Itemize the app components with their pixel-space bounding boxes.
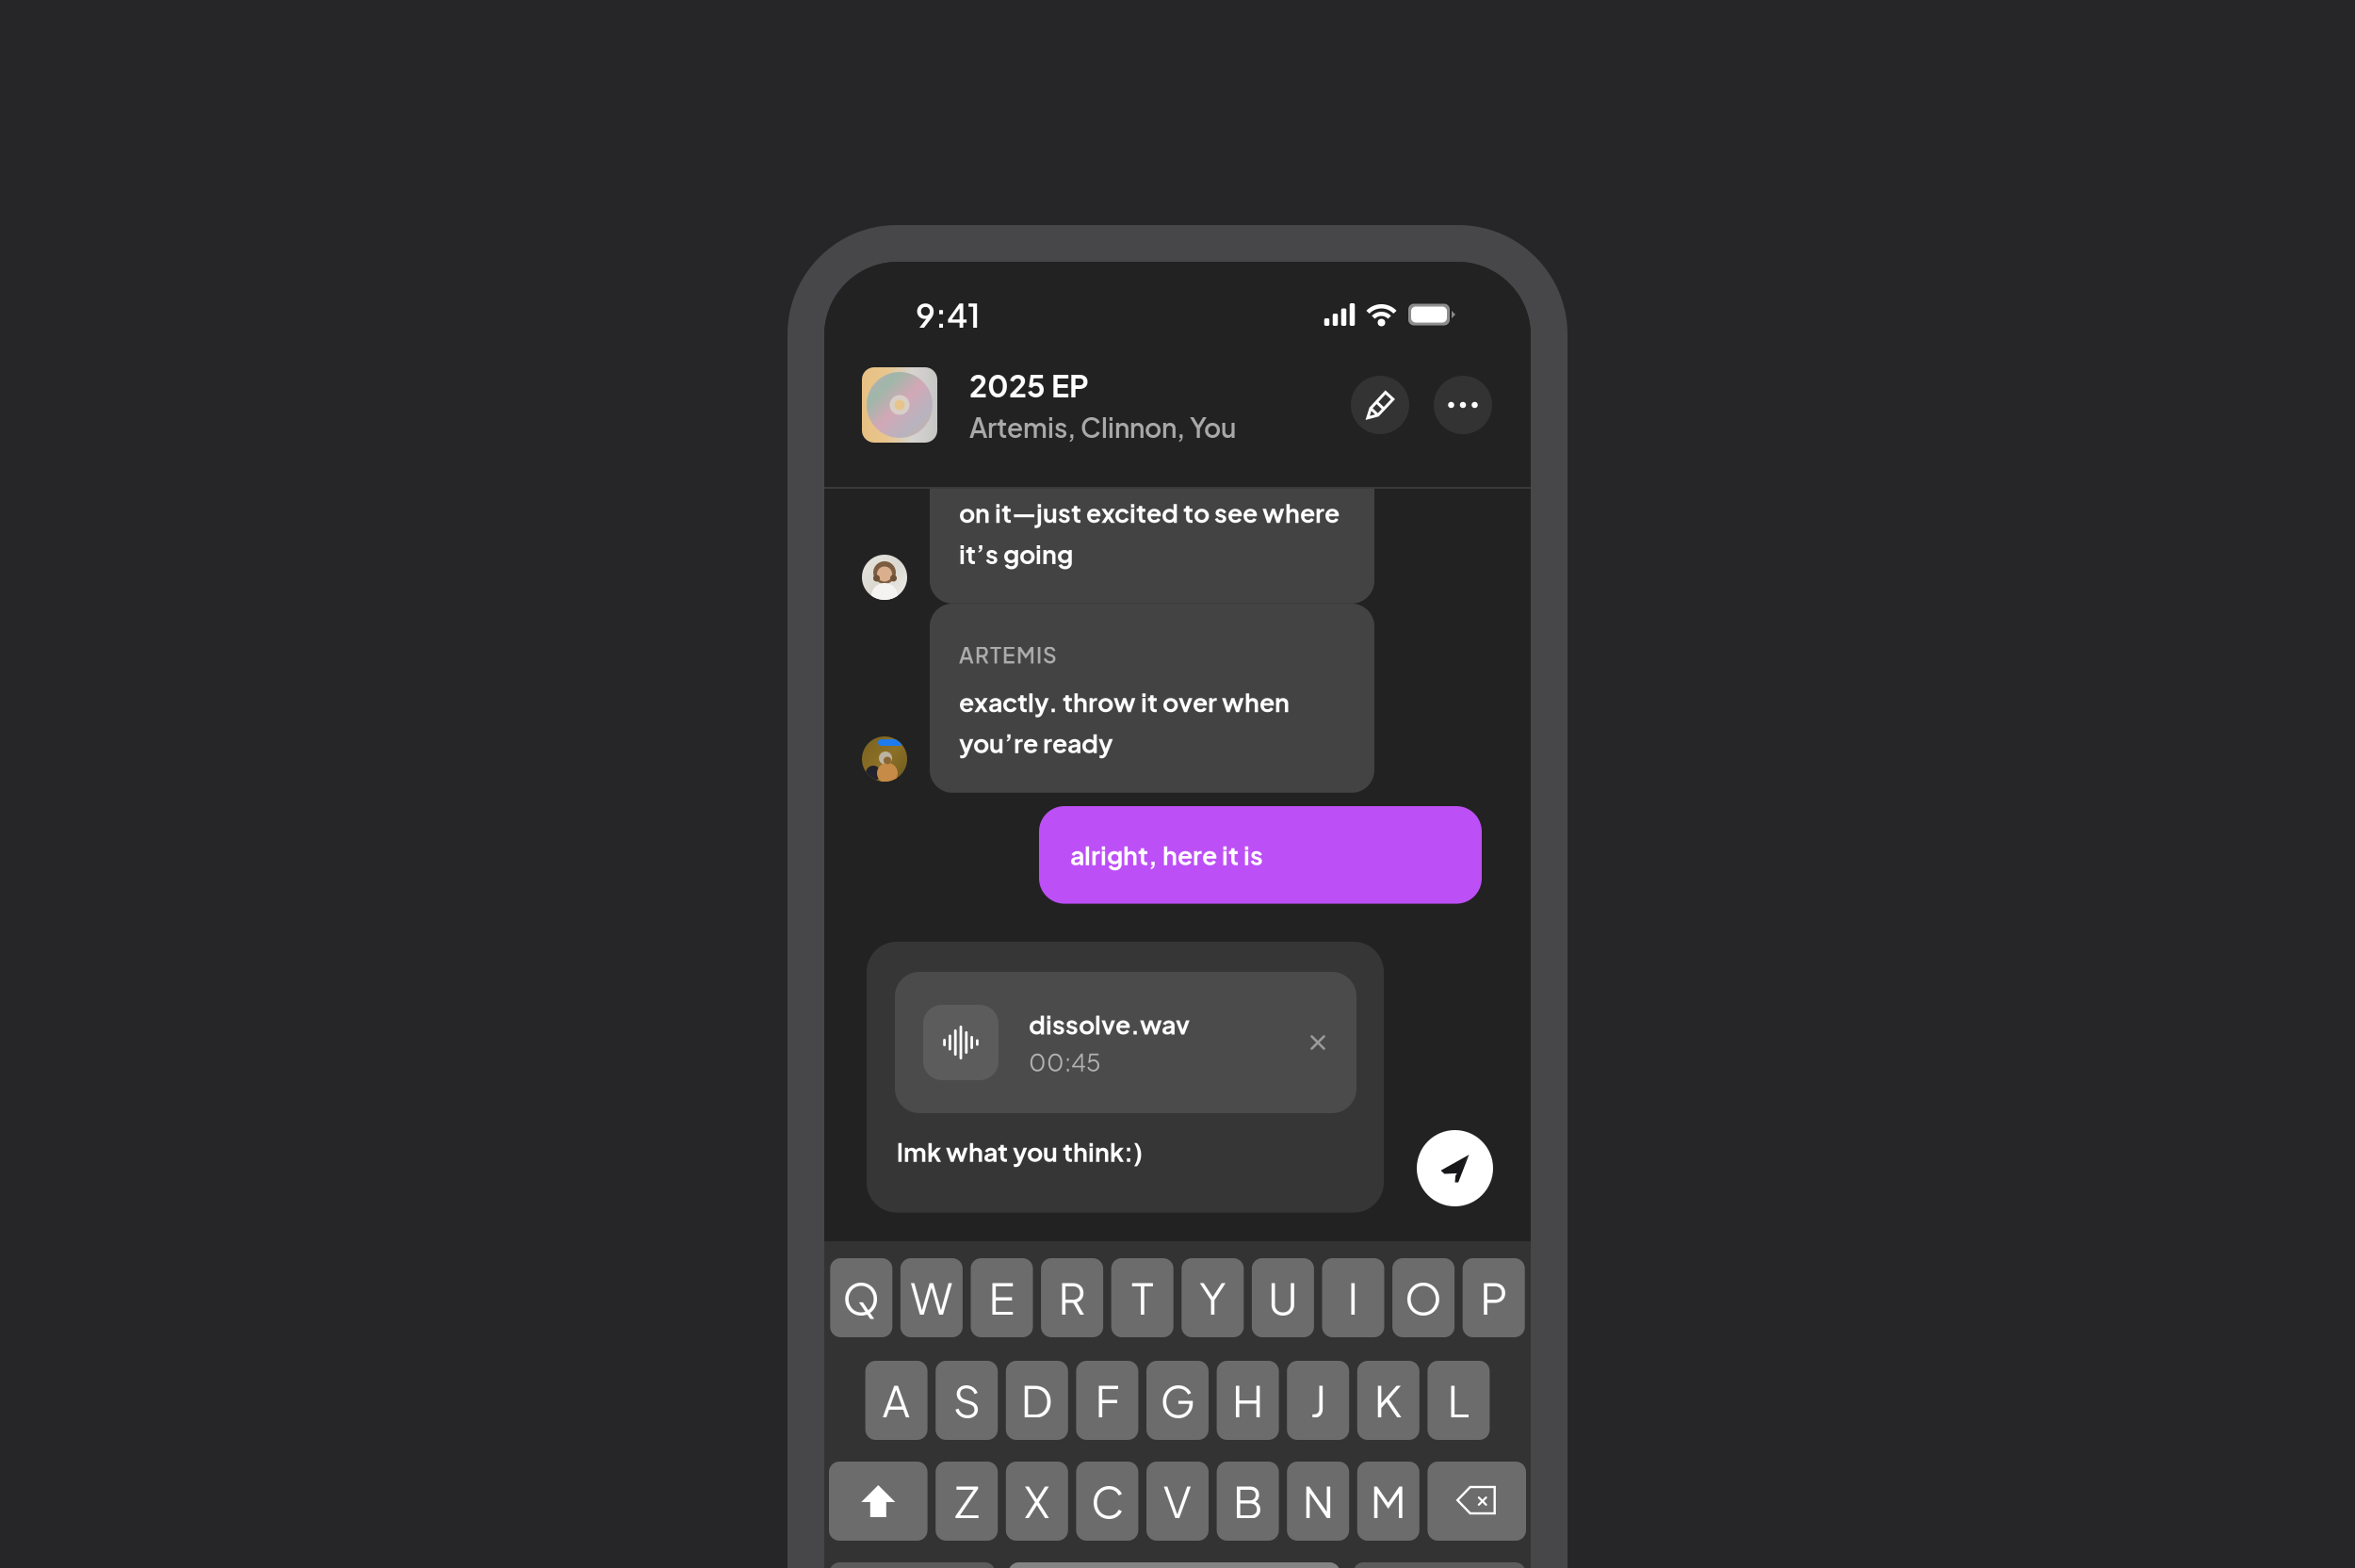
- button[interactable]: More options: [1434, 376, 1492, 434]
- button[interactable]: Z: [936, 1462, 998, 1541]
- button[interactable]: Shift: [829, 1462, 927, 1541]
- button[interactable]: C: [1076, 1462, 1138, 1541]
- button[interactable]: J: [1287, 1361, 1349, 1440]
- button[interactable]: Q: [830, 1258, 892, 1337]
- staticText: R: [1058, 1271, 1086, 1325]
- staticText: on it—just excited to see where: [959, 497, 1340, 529]
- staticText: K: [1374, 1373, 1402, 1427]
- staticText: B: [1233, 1474, 1262, 1528]
- staticText: A: [882, 1373, 911, 1427]
- button[interactable]: B: [1217, 1462, 1279, 1541]
- staticText: D: [1021, 1373, 1053, 1427]
- staticText: 9:41: [916, 294, 981, 335]
- staticText: M: [1370, 1474, 1406, 1528]
- staticText: Y: [1199, 1271, 1226, 1325]
- button[interactable]: Numbers: [829, 1562, 995, 1568]
- staticText: 2025 EP: [969, 366, 1089, 404]
- staticText: C: [1091, 1474, 1124, 1528]
- staticText: H: [1232, 1373, 1263, 1427]
- button[interactable]: P: [1463, 1258, 1525, 1337]
- staticText: V: [1163, 1474, 1192, 1528]
- button[interactable]: R: [1041, 1258, 1103, 1337]
- button[interactable]: D: [1006, 1361, 1068, 1440]
- button[interactable]: X: [1006, 1462, 1068, 1541]
- staticText: Artemis, Clinnon, You: [969, 411, 1236, 444]
- button[interactable]: L: [1428, 1361, 1490, 1440]
- button[interactable]: W: [900, 1258, 963, 1337]
- button[interactable]: Send: [1417, 1130, 1493, 1206]
- staticText: dissolve.wav: [1029, 1008, 1190, 1040]
- staticText: alright, here it is: [1070, 839, 1263, 871]
- button[interactable]: N: [1287, 1462, 1349, 1541]
- button[interactable]: U: [1252, 1258, 1314, 1337]
- staticText: 00:45: [1029, 1047, 1101, 1077]
- staticText: U: [1268, 1271, 1298, 1325]
- button[interactable]: V: [1146, 1462, 1209, 1541]
- staticText: N: [1303, 1474, 1334, 1528]
- staticText: lmk what you think:): [897, 1136, 1143, 1167]
- button[interactable]: Delete: [1428, 1462, 1526, 1541]
- staticText: S: [953, 1373, 980, 1427]
- staticText: A R T E M I S: [959, 641, 1057, 668]
- button[interactable]: Edit: [1351, 376, 1409, 434]
- staticText: O: [1405, 1271, 1442, 1325]
- staticText: you’re ready: [959, 727, 1113, 759]
- button[interactable]: Remove attachment: [1297, 1022, 1339, 1063]
- button[interactable]: G: [1146, 1361, 1209, 1440]
- staticText: X: [1024, 1474, 1050, 1528]
- staticText: exactly. throw it over when: [959, 686, 1290, 718]
- button[interactable]: H: [1217, 1361, 1279, 1440]
- button[interactable]: S: [936, 1361, 998, 1440]
- staticText: Q: [842, 1271, 880, 1325]
- button[interactable]: space: [1008, 1562, 1340, 1568]
- staticText: T: [1132, 1271, 1153, 1325]
- staticText: P: [1480, 1271, 1507, 1325]
- button[interactable]: E: [971, 1258, 1033, 1337]
- button[interactable]: Y: [1182, 1258, 1244, 1337]
- staticText: J: [1310, 1373, 1326, 1427]
- button[interactable]: return: [1353, 1562, 1526, 1568]
- button[interactable]: K: [1357, 1361, 1419, 1440]
- staticText: E: [989, 1271, 1015, 1325]
- staticText: I: [1348, 1271, 1359, 1325]
- staticText: F: [1095, 1373, 1119, 1427]
- button[interactable]: T: [1111, 1258, 1173, 1337]
- staticText: Z: [954, 1474, 979, 1528]
- button[interactable]: I: [1322, 1258, 1384, 1337]
- staticText: W: [910, 1271, 953, 1325]
- button[interactable]: A: [865, 1361, 927, 1440]
- staticText: it’s going: [959, 538, 1073, 570]
- button[interactable]: M: [1357, 1462, 1419, 1541]
- staticText: G: [1160, 1373, 1195, 1427]
- staticText: L: [1447, 1373, 1470, 1427]
- button[interactable]: O: [1392, 1258, 1455, 1337]
- button[interactable]: F: [1076, 1361, 1138, 1440]
